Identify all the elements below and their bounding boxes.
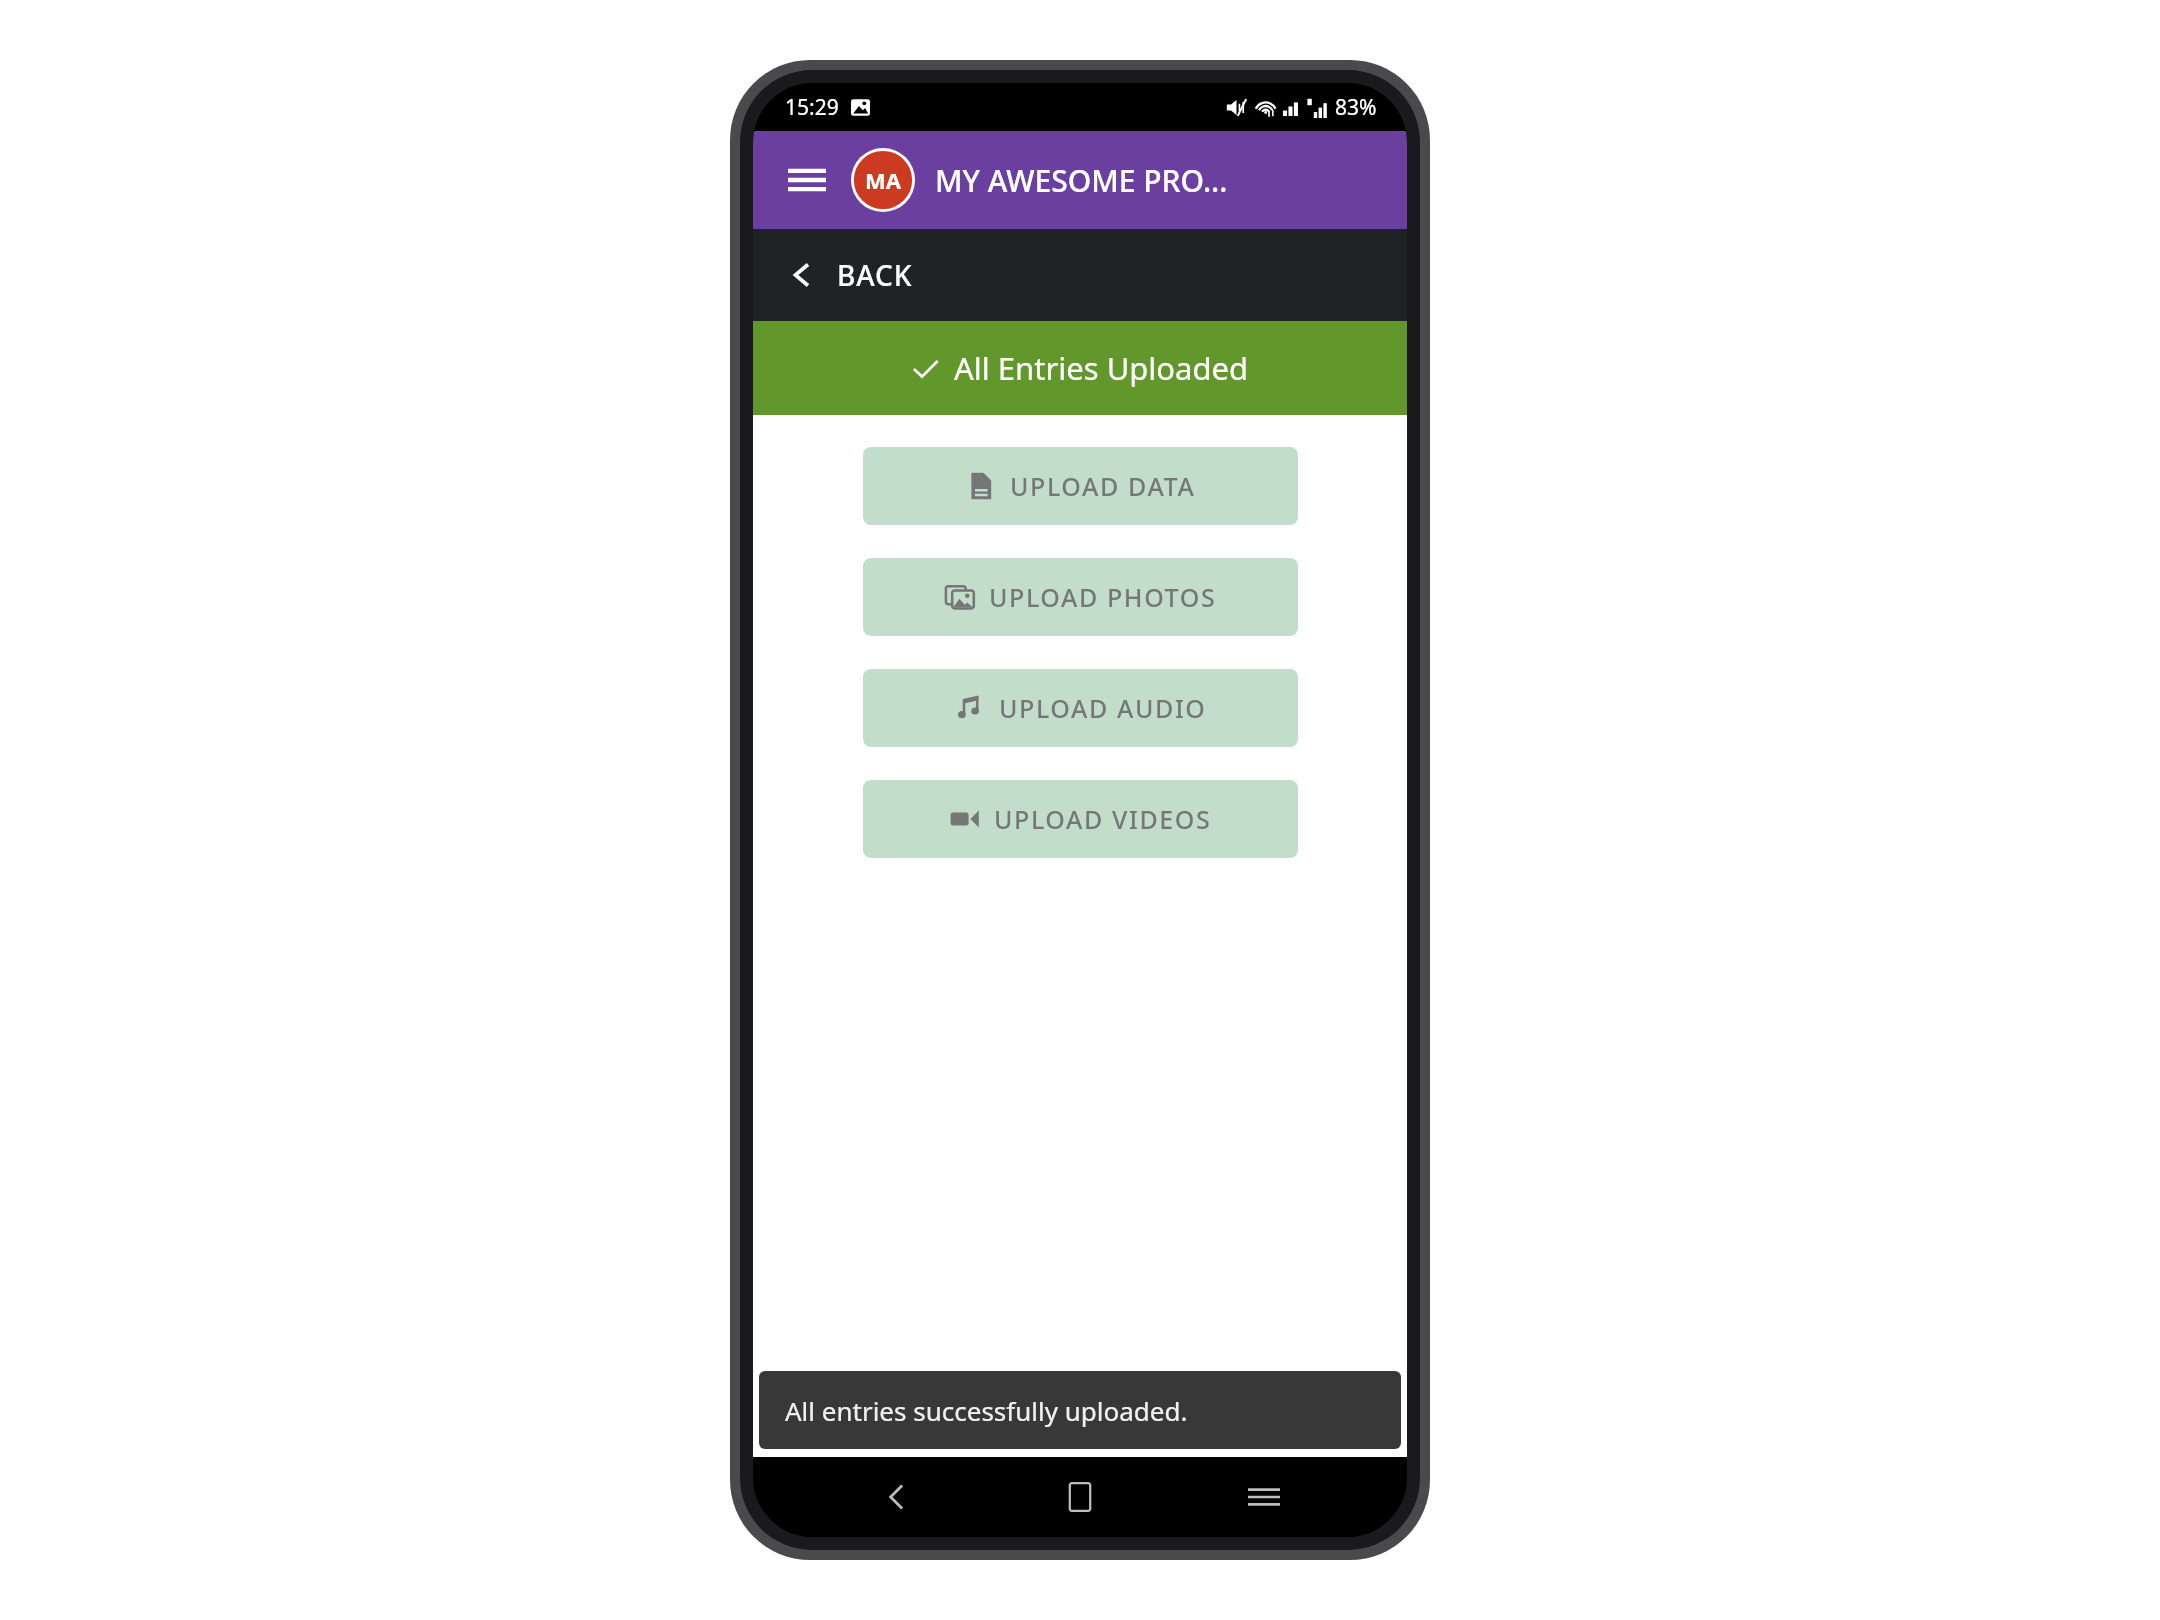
- staticText: UPLOAD VIDEOS: [994, 802, 1212, 836]
- button[interactable]: Recent apps: [1224, 1457, 1304, 1537]
- button[interactable]: Back: [857, 1457, 937, 1537]
- button[interactable]: UPLOAD VIDEOS: [863, 780, 1298, 858]
- staticText: 15:29: [785, 93, 839, 122]
- staticText: BACK: [837, 256, 913, 294]
- button[interactable]: UPLOAD PHOTOS: [863, 558, 1298, 636]
- button[interactable]: Open navigation menu: [773, 146, 841, 214]
- button[interactable]: UPLOAD DATA: [863, 447, 1298, 525]
- staticText: UPLOAD PHOTOS: [989, 580, 1217, 614]
- staticText: UPLOAD DATA: [1010, 469, 1196, 503]
- button[interactable]: UPLOAD AUDIO: [863, 669, 1298, 747]
- staticText: MY AWESOME PRO...: [935, 160, 1228, 201]
- staticText: All entries successfully uploaded.: [785, 1393, 1188, 1428]
- staticText: MA: [865, 165, 901, 195]
- button[interactable]: BACK: [753, 229, 1407, 321]
- staticText: All Entries Uploaded: [954, 347, 1249, 389]
- staticText: UPLOAD AUDIO: [999, 691, 1207, 725]
- button[interactable]: All entries successfully uploaded.: [759, 1371, 1401, 1449]
- button[interactable]: Home: [1040, 1457, 1120, 1537]
- staticText: 83%: [1335, 93, 1377, 122]
